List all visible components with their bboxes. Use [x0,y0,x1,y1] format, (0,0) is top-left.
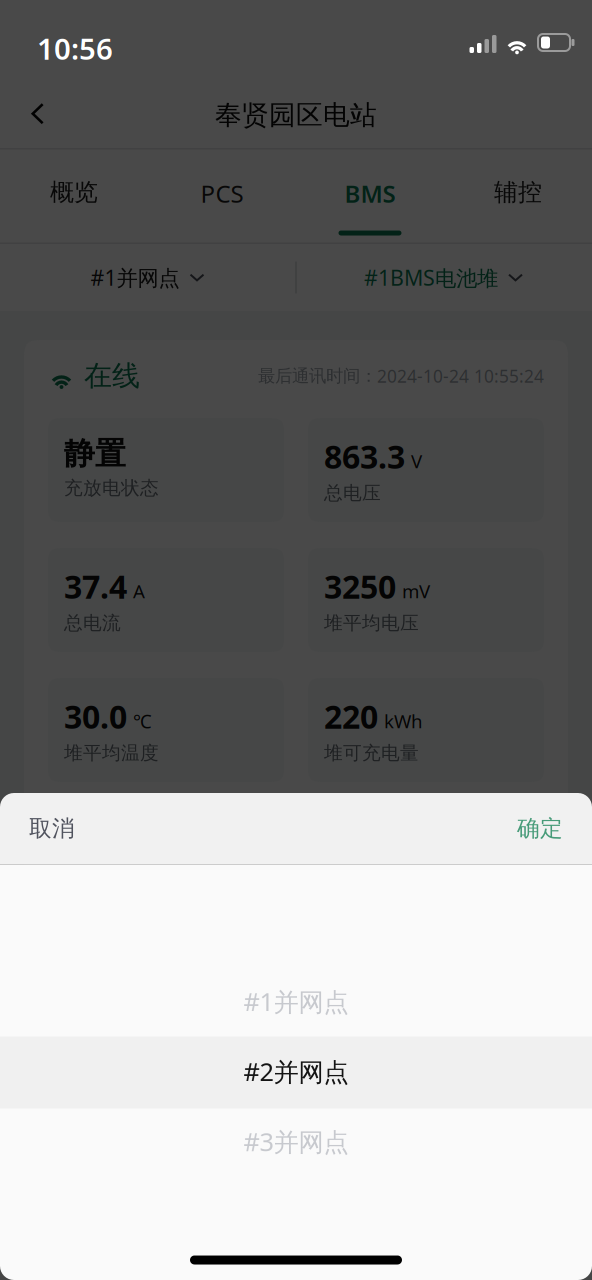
staticText: 堆平均温度 [64,741,159,764]
staticText: 辅控 [494,177,542,207]
button[interactable]: 返回 [12,87,66,143]
staticText: #1并网点 [90,263,179,292]
staticText: #1BMS电池堆 [364,263,498,292]
staticText: A [133,579,145,603]
staticText: 30.0 [64,695,127,737]
staticText: 总电压 [324,481,381,504]
button[interactable]: PCS [148,149,296,242]
button[interactable]: 取消 [0,792,99,864]
staticText: 堆可充电量 [324,741,419,764]
staticText: mV [402,579,430,603]
staticText: 2024-10-24 10:55:24 [377,364,544,387]
staticText: kWh [384,709,423,733]
staticText: 堆平均电压 [324,611,419,634]
button[interactable]: 确定 [493,792,592,864]
staticText: #1并网点 [243,985,348,1018]
button[interactable]: 概览 [0,149,148,242]
staticText: 充放电状态 [64,477,159,500]
button[interactable]: #2并网点 [0,1036,592,1106]
button[interactable]: #1并网点 [0,966,592,1036]
staticText: 总电流 [64,611,121,634]
staticText: #3并网点 [243,1125,348,1158]
staticText: 863.3 [324,435,405,477]
staticText: 最后通讯时间： [258,365,377,387]
button[interactable]: 辅控 [444,149,592,242]
staticText: #2并网点 [243,1055,348,1088]
button[interactable]: #3并网点 [0,1106,592,1176]
staticText: 在线 [84,359,140,393]
staticText: 确定 [517,815,563,842]
button[interactable]: BMS [296,149,444,242]
staticText: ℃ [133,709,152,733]
staticText: 3250 [324,565,396,607]
staticText: 概览 [50,177,98,207]
staticText: V [411,449,422,473]
button[interactable]: #1BMS电池堆 [296,244,592,311]
staticText: 取消 [29,815,75,842]
staticText: 10:56 [37,29,113,68]
staticText: 奉贤园区电站 [215,99,377,131]
staticText: 220 [324,695,378,737]
button[interactable]: #1并网点 [0,244,296,311]
staticText: 37.4 [64,565,127,607]
staticText: BMS [344,177,395,209]
staticText: PCS [200,177,243,209]
staticText: 静置 [64,435,126,473]
